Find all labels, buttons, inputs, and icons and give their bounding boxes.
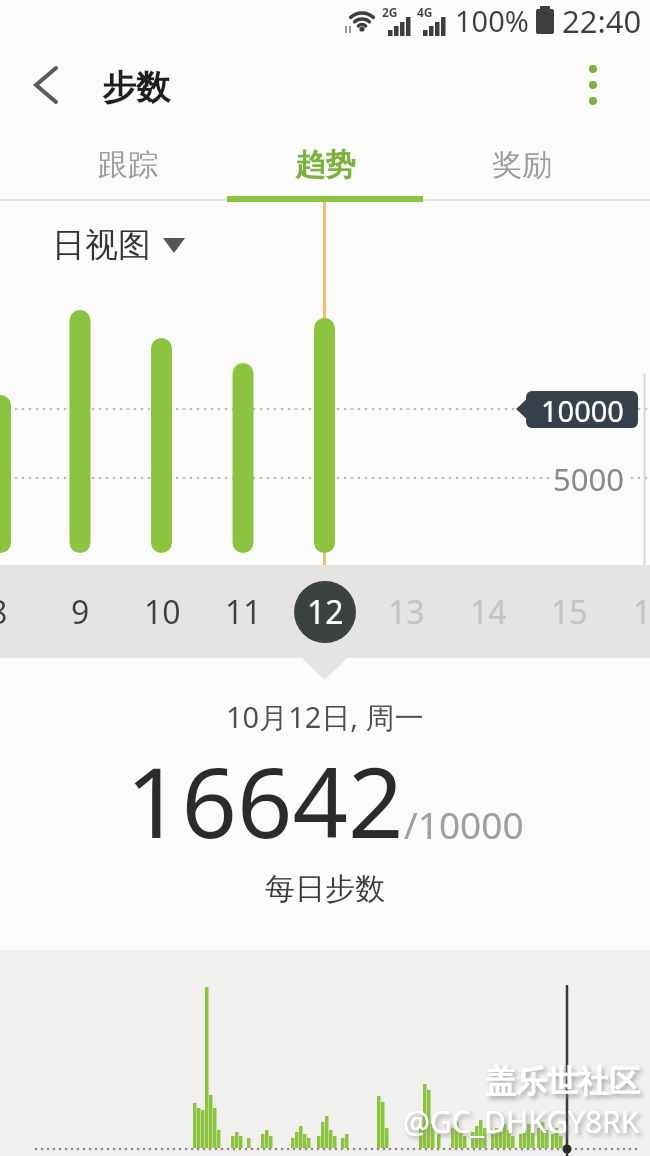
staticText: 22:40	[562, 0, 642, 40]
button[interactable]: 14	[457, 581, 519, 643]
staticText: 14	[470, 590, 507, 634]
button[interactable]: 12	[294, 581, 356, 643]
button[interactable]: 15	[538, 581, 600, 643]
staticText: 16642	[126, 734, 404, 844]
staticText: 9	[71, 590, 90, 634]
staticText: 步数	[102, 66, 170, 109]
staticText: 奖励	[492, 146, 552, 184]
staticText: /10000	[404, 799, 524, 849]
staticText: 每日步数	[265, 870, 385, 908]
button[interactable]: 奖励	[423, 135, 620, 195]
staticText: 5000	[553, 458, 624, 498]
button[interactable]	[20, 60, 70, 110]
button[interactable]: 11	[212, 581, 274, 643]
staticText: 11	[225, 590, 262, 634]
staticText: 15	[551, 590, 588, 634]
staticText: 2G	[382, 4, 398, 20]
staticText: 10月12日, 周一	[226, 697, 424, 737]
button[interactable]: 13	[375, 581, 437, 643]
staticText: 12	[307, 590, 344, 634]
staticText: 8	[0, 590, 8, 634]
button[interactable]: 趋势	[226, 135, 423, 195]
staticText: 13	[388, 590, 425, 634]
button[interactable]	[568, 60, 618, 110]
button[interactable]: 10	[131, 581, 193, 643]
staticText: 100%	[455, 1, 529, 40]
button[interactable]: 跟踪	[30, 135, 226, 195]
staticText: 跟踪	[98, 146, 158, 184]
staticText: @GC_DHKGY8RK	[403, 1101, 640, 1142]
button[interactable]: 日视图	[52, 222, 185, 268]
staticText: 4G	[417, 4, 433, 20]
staticText: 盖乐世社区	[485, 1062, 640, 1101]
staticText: 16	[633, 590, 650, 634]
button[interactable]: 9	[49, 581, 111, 643]
staticText: 10	[144, 590, 181, 634]
staticText: 10000	[541, 391, 624, 428]
staticText: 日视图	[52, 224, 151, 266]
staticText: 趋势	[295, 146, 355, 184]
button[interactable]: 16	[620, 581, 650, 643]
button[interactable]: 8	[0, 581, 29, 643]
